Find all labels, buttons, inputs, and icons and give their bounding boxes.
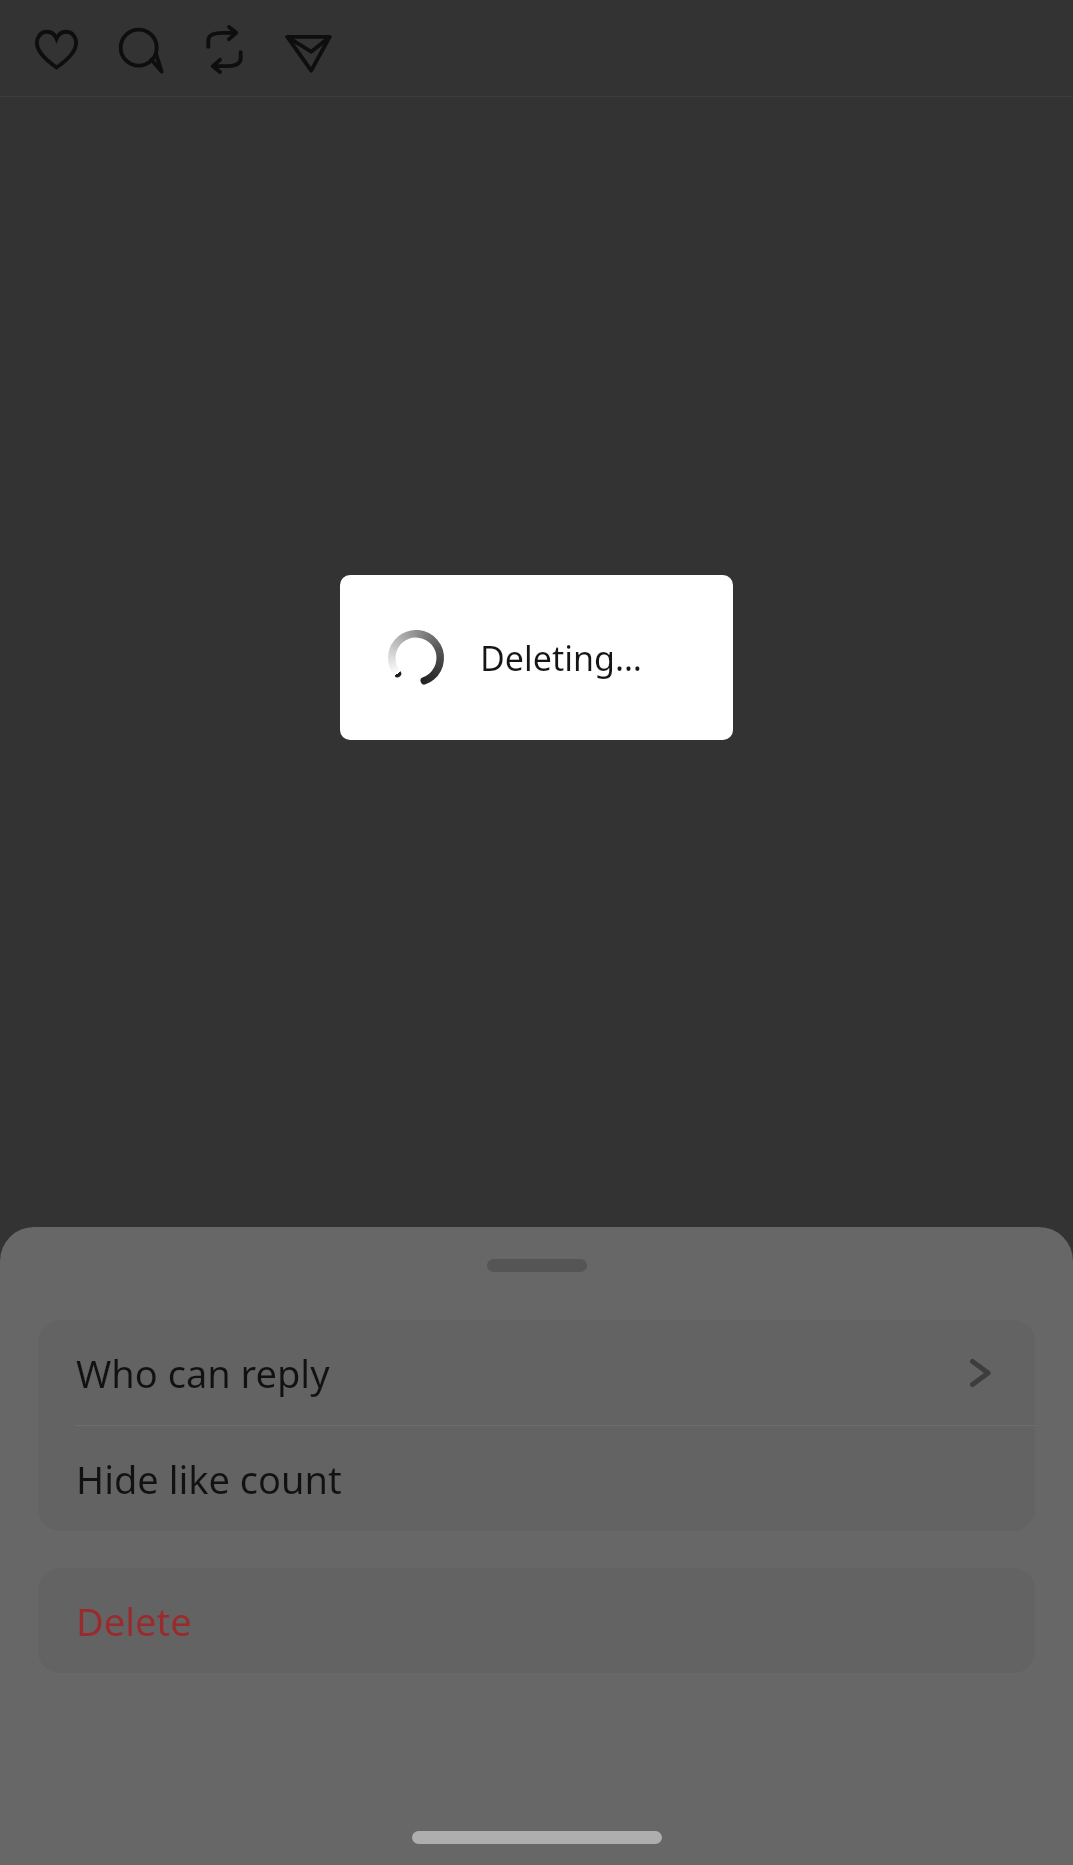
staticText: Hide like count: [76, 1453, 342, 1505]
staticText: Who can reply: [76, 1347, 330, 1399]
button[interactable]: Comment: [98, 7, 182, 91]
button[interactable]: Like: [14, 7, 98, 91]
button[interactable]: Delete: [38, 1568, 1035, 1673]
staticText: Deleting…: [480, 635, 642, 681]
button[interactable]: Who can reply: [38, 1320, 1035, 1425]
staticText: Delete: [76, 1595, 192, 1647]
button[interactable]: Hide like count: [38, 1426, 1035, 1531]
button[interactable]: Share: [266, 7, 350, 91]
button[interactable]: Repost: [182, 7, 266, 91]
